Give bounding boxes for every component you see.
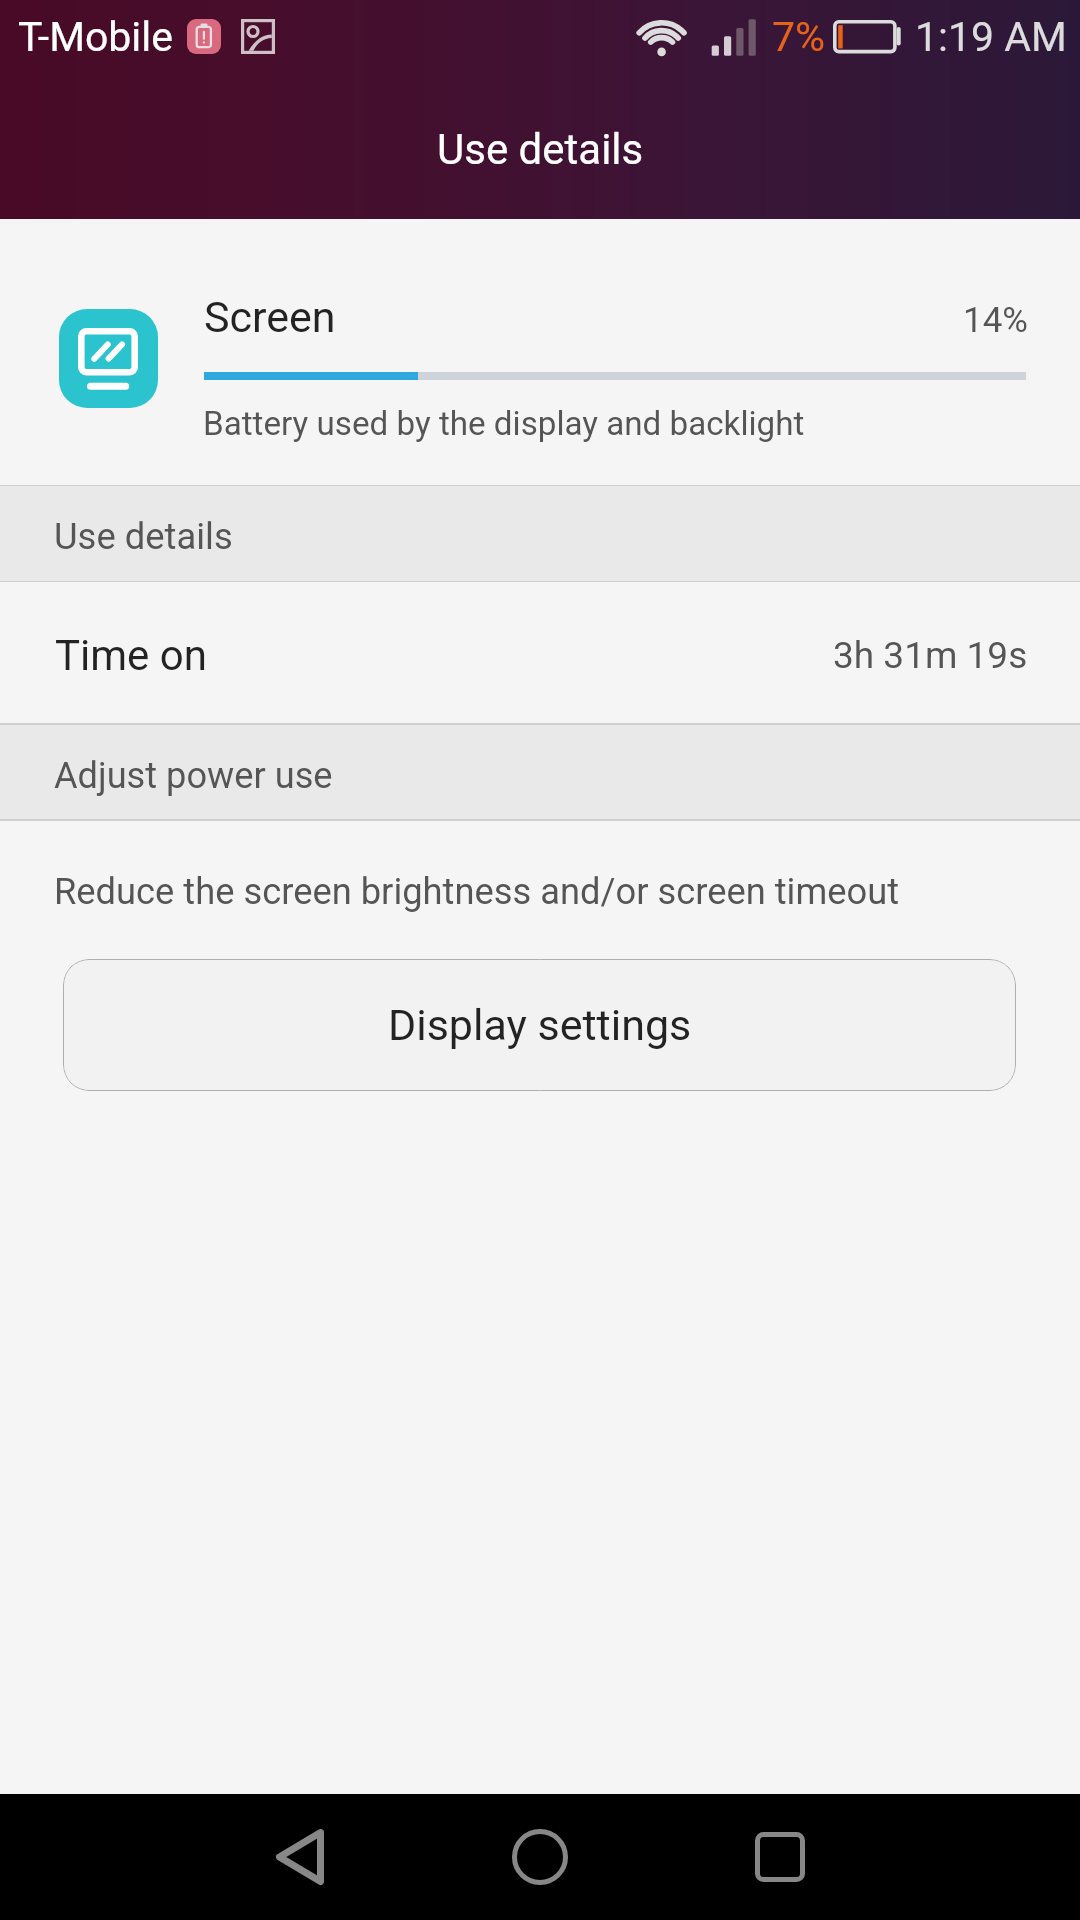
staticText: Battery used by the display and backligh… [203, 404, 805, 443]
button[interactable]: Time on [0, 582, 1080, 723]
staticText: 14% [963, 300, 1028, 341]
button[interactable]: Home [420, 1794, 660, 1920]
staticText: T-Mobile [18, 13, 174, 61]
staticText: Reduce the screen brightness and/or scre… [54, 870, 900, 913]
staticText: 1:19 AM [915, 13, 1067, 61]
staticText: Adjust power use [54, 754, 333, 796]
staticText: Time on [55, 631, 207, 680]
staticText: Use details [437, 125, 644, 174]
button[interactable]: Display settings [63, 959, 1016, 1091]
button[interactable]: Recent apps [660, 1794, 900, 1920]
staticText: 7% [772, 13, 826, 61]
staticText: Screen [204, 292, 336, 342]
staticText: Display settings [388, 1000, 692, 1050]
staticText: Use details [54, 515, 233, 558]
staticText: 3h 31m 19s [833, 634, 1028, 677]
button[interactable]: Back [180, 1794, 420, 1920]
